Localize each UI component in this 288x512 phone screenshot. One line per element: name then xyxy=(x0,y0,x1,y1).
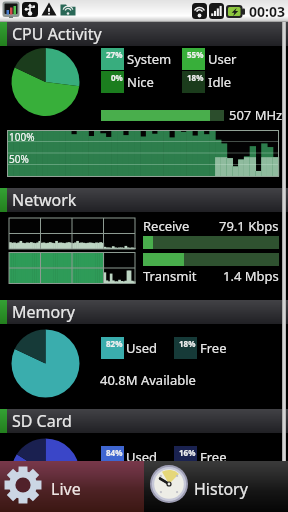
button[interactable]: SD Card xyxy=(0,409,288,433)
staticText: Live xyxy=(51,478,81,500)
staticText: Free xyxy=(200,448,227,466)
button[interactable]: Memory xyxy=(0,300,288,324)
staticText: Idle xyxy=(208,73,232,91)
staticText: 40.8M Available xyxy=(100,371,196,389)
staticText: 84% xyxy=(106,447,123,458)
button[interactable]: Live xyxy=(0,461,144,512)
other: Live xyxy=(4,466,42,504)
staticText: Network xyxy=(12,189,77,211)
staticText: Free xyxy=(200,339,227,357)
staticText: 82% xyxy=(106,338,123,349)
staticText: Memory xyxy=(12,301,75,323)
staticText: SD Card xyxy=(12,410,72,432)
staticText: 18% xyxy=(187,72,204,83)
other: History xyxy=(150,465,188,503)
staticText: 100% xyxy=(9,130,35,144)
staticText: Receive xyxy=(143,217,190,235)
staticText: User xyxy=(208,50,237,68)
staticText: 27% xyxy=(106,49,123,60)
staticText: 16% xyxy=(179,447,196,458)
staticText: Transmit xyxy=(143,267,197,285)
staticText: Nice xyxy=(127,73,154,91)
staticText: 0% xyxy=(111,72,123,83)
staticText: 1.4 Mbps xyxy=(223,267,279,285)
staticText: History xyxy=(194,478,248,500)
button[interactable]: History xyxy=(144,461,288,512)
staticText: System xyxy=(127,50,172,68)
staticText: 507 MHz xyxy=(229,106,283,124)
staticText: 18% xyxy=(179,338,196,349)
button[interactable]: CPU Activity xyxy=(0,22,288,46)
staticText: Used xyxy=(126,448,158,466)
staticText: 50% xyxy=(9,152,29,166)
staticText: 00:03 xyxy=(249,2,285,21)
staticText: Used xyxy=(126,339,158,357)
staticText: CPU Activity xyxy=(12,23,102,45)
button[interactable]: Network xyxy=(0,188,288,212)
staticText: 79.1 Kbps xyxy=(219,217,279,235)
staticText: 55% xyxy=(187,49,204,60)
